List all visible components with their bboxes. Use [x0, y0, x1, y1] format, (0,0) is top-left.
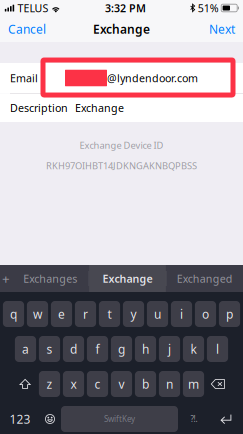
staticText: c: [94, 376, 100, 392]
staticText: s: [46, 341, 52, 357]
button[interactable]: e: [51, 301, 72, 327]
button[interactable]: Email: [0, 63, 243, 93]
staticText: i: [180, 306, 183, 322]
staticText: j: [168, 341, 171, 357]
button[interactable]: m: [183, 371, 204, 397]
button[interactable]: Exchange: [89, 265, 166, 292]
staticText: x: [70, 376, 76, 392]
button[interactable]: k: [183, 336, 204, 362]
staticText: p: [226, 306, 233, 322]
button[interactable]: s: [39, 336, 60, 362]
button[interactable]: Cancel: [1, 16, 53, 42]
button[interactable]: Add: [0, 265, 12, 292]
staticText: r: [83, 306, 88, 322]
button[interactable]: Description: [0, 94, 243, 122]
button[interactable]: g: [111, 336, 132, 362]
staticText: a: [22, 341, 29, 357]
button[interactable]: t: [99, 301, 120, 327]
staticText: @lyndendoor.com: [107, 71, 198, 85]
button[interactable]: j: [159, 336, 180, 362]
button[interactable]: Delete: [207, 371, 229, 397]
button[interactable]: n: [159, 371, 180, 397]
staticText: Exchange: [93, 21, 150, 37]
staticText: h: [142, 341, 149, 357]
staticText: d: [70, 341, 77, 357]
staticText: n: [166, 376, 173, 392]
button[interactable]: f: [87, 336, 108, 362]
staticText: o: [202, 306, 209, 322]
button[interactable]: l: [207, 336, 228, 362]
staticText: SwiftKey: [104, 414, 135, 424]
button[interactable]: Emoji: [39, 406, 61, 432]
staticText: Description: [10, 101, 68, 115]
button[interactable]: Shift: [14, 371, 36, 397]
button[interactable]: Next: [202, 16, 242, 42]
staticText: Next: [209, 21, 235, 37]
button[interactable]: x: [63, 371, 84, 397]
button[interactable]: i: [171, 301, 192, 327]
staticText: Exchange: [75, 101, 124, 115]
staticText: TELUS: [17, 1, 48, 15]
button[interactable]: q: [3, 301, 24, 327]
button[interactable]: o: [195, 301, 216, 327]
button[interactable]: p: [219, 301, 240, 327]
button[interactable]: b: [135, 371, 156, 397]
button[interactable]: d: [63, 336, 84, 362]
staticText: f: [95, 341, 99, 357]
staticText: 123: [9, 411, 30, 427]
staticText: b: [142, 376, 149, 392]
button[interactable]: r: [75, 301, 96, 327]
staticText: Exchanged: [177, 271, 233, 286]
staticText: Exchange: [102, 271, 152, 286]
button[interactable]: c: [87, 371, 108, 397]
button[interactable]: h: [135, 336, 156, 362]
staticText: +: [2, 270, 10, 287]
staticText: v: [118, 376, 124, 392]
staticText: w: [33, 306, 42, 322]
staticText: z: [46, 376, 52, 392]
staticText: t: [107, 306, 111, 322]
button[interactable]: w: [27, 301, 48, 327]
staticText: e: [58, 306, 65, 322]
button[interactable]: Space: [61, 406, 178, 432]
staticText: 51%: [198, 1, 219, 15]
staticText: y: [130, 306, 136, 322]
staticText: Exchange Device ID: [79, 139, 163, 151]
staticText: Email: [10, 71, 38, 85]
staticText: ?!.: [190, 414, 197, 424]
staticText: 3:32 PM: [105, 1, 146, 15]
button[interactable]: Return: [210, 406, 242, 432]
staticText: m: [188, 376, 199, 392]
button[interactable]: Exchanges: [12, 265, 89, 292]
button[interactable]: z: [39, 371, 60, 397]
staticText: k: [190, 341, 196, 357]
staticText: Exchanges: [23, 271, 77, 286]
button[interactable]: a: [15, 336, 36, 362]
staticText: q: [10, 306, 17, 322]
button[interactable]: y: [123, 301, 144, 327]
staticText: g: [118, 341, 125, 357]
button[interactable]: Symbols: [178, 406, 210, 432]
button[interactable]: v: [111, 371, 132, 397]
staticText: u: [154, 306, 161, 322]
button[interactable]: Numbers: [1, 406, 39, 432]
button[interactable]: Exchanged: [166, 265, 243, 292]
staticText: l: [216, 341, 219, 357]
button[interactable]: u: [147, 301, 168, 327]
staticText: RKH97OIHBT14JDKNGAKNBQPBSS: [46, 159, 197, 172]
staticText: Cancel: [8, 21, 46, 37]
